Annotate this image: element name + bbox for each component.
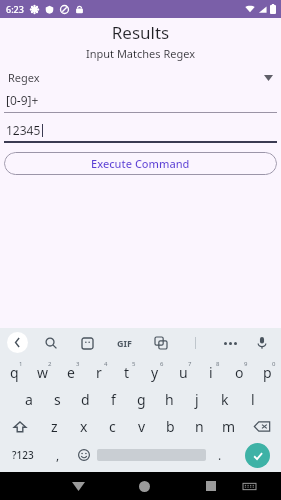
staticText: x: [80, 417, 88, 436]
staticText: 6:23: [6, 3, 24, 15]
button[interactable]: z: [39, 413, 69, 440]
staticText: a: [25, 390, 33, 409]
button[interactable]: ?123: [0, 440, 46, 470]
staticText: s: [54, 390, 61, 409]
button[interactable]: Execute Command: [4, 152, 277, 175]
button[interactable]: Back: [59, 472, 98, 500]
staticText: ,: [56, 447, 60, 463]
staticText: Regex: [8, 70, 40, 85]
button[interactable]: 12345: [0, 122, 281, 143]
button[interactable]: Search: [40, 332, 62, 354]
staticText: j: [195, 390, 199, 409]
button[interactable]: Voice input: [251, 332, 273, 354]
button[interactable]: Regex: [0, 68, 281, 87]
staticText: y: [151, 363, 159, 382]
button[interactable]: Home: [125, 472, 164, 500]
staticText: n: [195, 417, 204, 436]
staticText: .: [218, 447, 222, 463]
button[interactable]: .: [206, 440, 233, 470]
staticText: 6: [160, 360, 164, 368]
staticText: z: [51, 417, 58, 436]
button[interactable]: Translate: [150, 332, 172, 354]
staticText: 7: [188, 360, 192, 368]
button[interactable]: GIF: [112, 331, 136, 355]
button[interactable]: m: [214, 413, 243, 440]
button[interactable]: t: [113, 359, 141, 386]
button[interactable]: u: [169, 359, 197, 386]
button[interactable]: [0-9]+: [0, 92, 281, 113]
button[interactable]: o: [225, 359, 253, 386]
button[interactable]: Emoji: [70, 440, 97, 470]
button[interactable]: l: [239, 386, 267, 413]
staticText: 3: [76, 360, 80, 368]
staticText: 1: [19, 360, 23, 368]
staticText: b: [166, 417, 175, 436]
staticText: h: [165, 390, 174, 409]
staticText: w: [37, 363, 49, 382]
button[interactable]: p: [253, 359, 281, 386]
button[interactable]: More options: [219, 332, 241, 354]
staticText: [0-9]+: [6, 92, 39, 108]
staticText: Results: [0, 21, 281, 44]
button[interactable]: j: [183, 386, 211, 413]
button[interactable]: ,: [46, 440, 70, 470]
button[interactable]: f: [99, 386, 127, 413]
staticText: 2: [48, 360, 52, 368]
staticText: c: [109, 417, 116, 436]
staticText: q: [10, 363, 19, 382]
button[interactable]: Recents: [191, 472, 230, 500]
staticText: m: [222, 417, 236, 436]
staticText: g: [137, 390, 146, 409]
button[interactable]: n: [185, 413, 214, 440]
staticText: 0: [272, 360, 276, 368]
staticText: 9: [244, 360, 248, 368]
staticText: u: [179, 363, 188, 382]
staticText: o: [235, 363, 244, 382]
staticText: 8: [216, 360, 220, 368]
staticText: 12345: [6, 122, 41, 138]
button[interactable]: q: [0, 359, 29, 386]
button[interactable]: s: [43, 386, 71, 413]
button[interactable]: k: [211, 386, 239, 413]
staticText: 5: [132, 360, 136, 368]
button[interactable]: Back: [7, 332, 28, 353]
button[interactable]: Keyboard: [230, 472, 269, 500]
button[interactable]: Shift: [0, 413, 39, 440]
staticText: GIF: [117, 337, 132, 349]
button[interactable]: w: [29, 359, 57, 386]
button[interactable]: d: [71, 386, 99, 413]
staticText: k: [221, 390, 229, 409]
button[interactable]: r: [85, 359, 113, 386]
button[interactable]: e: [57, 359, 85, 386]
staticText: ?123: [12, 448, 34, 462]
staticText: i: [209, 363, 213, 382]
button[interactable]: Backspace: [243, 413, 281, 440]
button[interactable]: x: [69, 413, 98, 440]
button[interactable]: h: [155, 386, 183, 413]
button[interactable]: b: [156, 413, 185, 440]
button[interactable]: v: [127, 413, 156, 440]
button[interactable]: y: [141, 359, 169, 386]
staticText: p: [263, 363, 272, 382]
staticText: 4: [104, 360, 108, 368]
staticText: f: [111, 390, 116, 409]
staticText: v: [138, 417, 146, 436]
button[interactable]: a: [15, 386, 43, 413]
staticText: d: [81, 390, 90, 409]
button[interactable]: i: [197, 359, 225, 386]
staticText: l: [251, 390, 255, 409]
staticText: t: [124, 363, 130, 382]
button[interactable]: Stickers: [76, 332, 98, 354]
button[interactable]: Done: [245, 443, 270, 468]
staticText: Input Matches Regex: [0, 46, 281, 61]
staticText: e: [67, 363, 75, 382]
staticText: Execute Command: [91, 156, 190, 171]
staticText: r: [96, 363, 102, 382]
button[interactable]: c: [98, 413, 127, 440]
button[interactable]: g: [127, 386, 155, 413]
